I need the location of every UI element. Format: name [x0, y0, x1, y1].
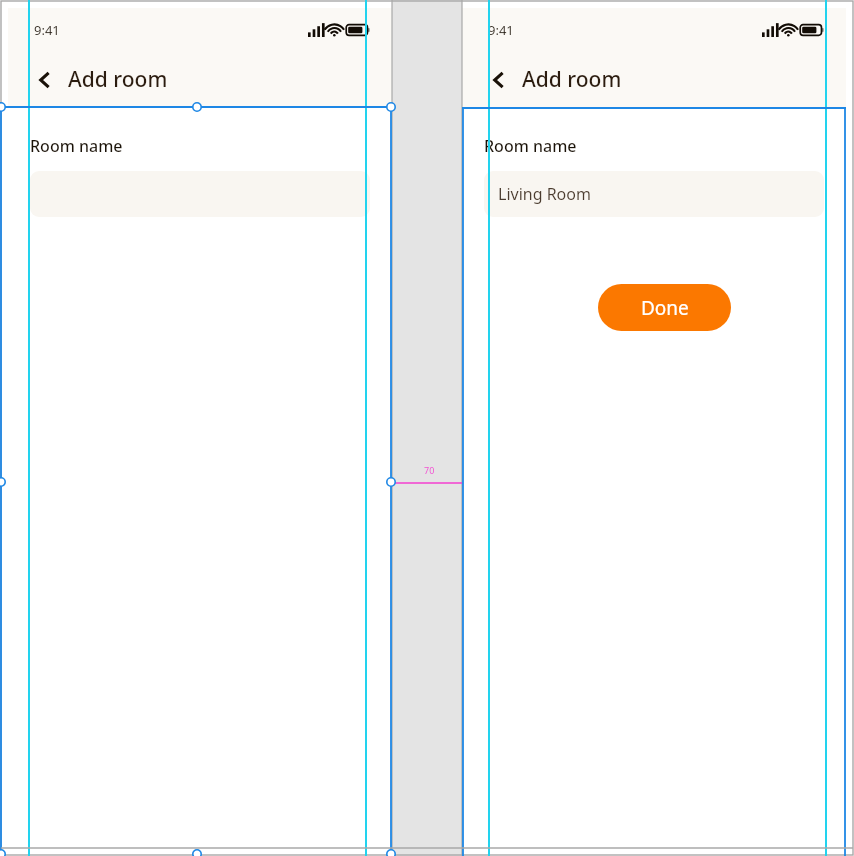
- staticText: 70: [424, 464, 435, 476]
- staticText: Room name: [30, 135, 123, 157]
- button[interactable]: Done: [598, 284, 731, 331]
- staticText: Living Room: [498, 183, 591, 205]
- button[interactable]: Living Room: [484, 171, 824, 217]
- button[interactable]: Back: [28, 63, 62, 97]
- button[interactable]: Back: [482, 63, 516, 97]
- staticText: Room name: [484, 135, 577, 157]
- staticText: 9:41: [488, 21, 514, 39]
- staticText: Done: [641, 295, 689, 321]
- staticText: Add room: [522, 65, 622, 94]
- staticText: 9:41: [34, 21, 60, 39]
- staticText: Add room: [68, 65, 168, 94]
- button[interactable]: [30, 171, 370, 217]
